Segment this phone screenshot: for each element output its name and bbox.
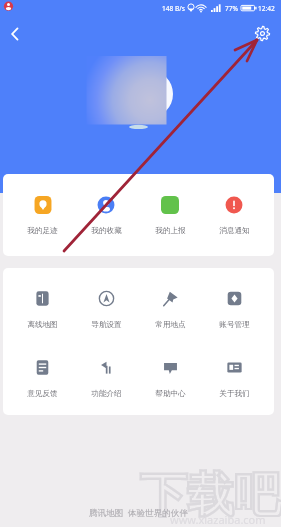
staticText: 意见反馈 [27,389,58,399]
button[interactable]: 意见反馈 [11,359,74,399]
button[interactable]: 常用地点 [138,290,202,330]
button[interactable]: 我的收藏 [74,196,138,236]
button[interactable]: 我的上报 [138,196,202,236]
button[interactable]: 导航设置 [74,290,138,330]
button[interactable]: 关于我们 [202,359,266,399]
button[interactable]: Back [3,22,27,46]
staticText: www.xiazaiba.com [170,512,266,527]
staticText: 导航设置 [91,320,122,330]
button[interactable]: 离线地图 [11,290,74,330]
staticText: 下载吧 [140,466,281,525]
staticText: 帮助中心 [155,389,186,399]
button[interactable]: 账号管理 [202,290,266,330]
staticText: 账号管理 [219,320,250,330]
staticText: 消息通知 [219,226,250,236]
button[interactable]: Settings [250,21,274,45]
staticText: 常用地点 [155,320,186,330]
button[interactable]: 消息通知 [202,196,266,236]
button[interactable]: 功能介绍 [74,359,138,399]
button[interactable]: 我的足迹 [11,196,74,236]
staticText: 关于我们 [219,389,250,399]
button[interactable]: 帮助中心 [138,359,202,399]
staticText: 148 B/s [162,4,185,13]
staticText: 12:42 [258,4,275,13]
staticText: 我的上报 [155,226,186,236]
staticText: 功能介绍 [91,389,122,399]
staticText: 我的收藏 [91,226,122,236]
staticText: 腾讯地图 体验世界的伙伴 [89,507,189,519]
staticText: 离线地图 [27,320,58,330]
staticText: 77% [225,4,239,13]
staticText: 我的足迹 [27,226,58,236]
